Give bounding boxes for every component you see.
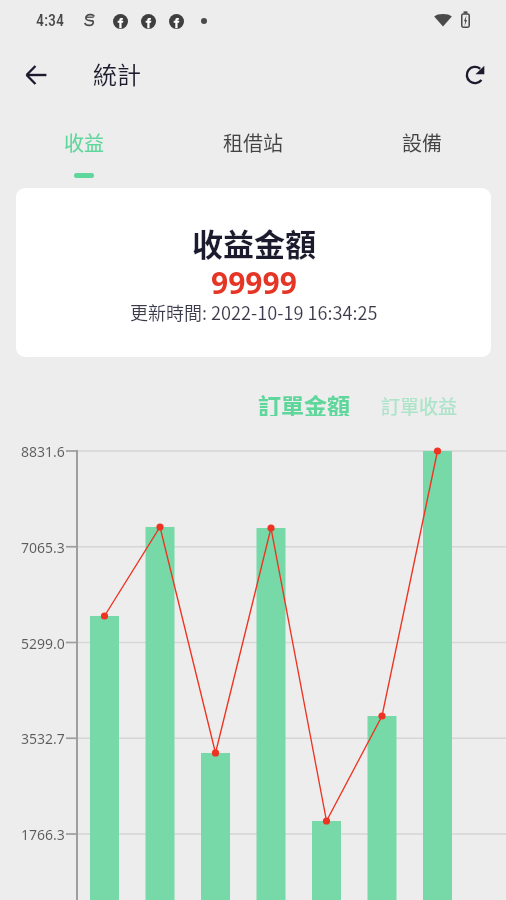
staticText: 收益 [64,128,104,157]
button[interactable]: Back [14,53,58,97]
staticText: 8831.6 [21,442,65,461]
button[interactable]: 訂單收益 [381,388,458,416]
staticText: 設備 [402,128,442,157]
button[interactable]: 收益金額 [16,188,491,357]
staticText: 7065.3 [21,538,65,557]
staticText: 更新時間: 2022-10-19 16:34:25 [130,299,378,325]
staticText: 1766.3 [21,825,65,844]
button[interactable]: Refresh [453,53,497,97]
staticText: 5299.0 [21,634,65,653]
staticText: 3532.7 [21,729,65,748]
staticText: 租借站 [223,128,283,157]
button[interactable]: 訂單金額 [258,388,350,416]
staticText: 統計 [93,56,141,91]
staticText: 收益金額 [192,220,316,265]
staticText: 4:34 [36,11,65,30]
button[interactable]: 收益 [0,110,168,188]
staticText: 99999 [211,262,297,303]
button[interactable]: 設備 [337,110,506,188]
button[interactable]: 租借站 [168,110,337,188]
